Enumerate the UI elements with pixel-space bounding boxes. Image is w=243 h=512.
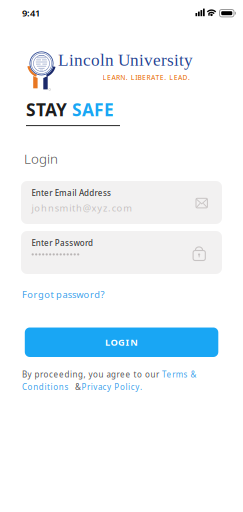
staticText: Terms & (162, 369, 197, 380)
staticText: SAFE (72, 98, 114, 121)
staticText: Privacy Policy. (81, 382, 142, 392)
staticText: & (75, 382, 81, 392)
button[interactable]: Enter Email Address (21, 181, 222, 224)
staticText: johnsmith@xyz.com (31, 202, 132, 214)
button[interactable]: Privacy Policy. (81, 382, 161, 392)
staticText: Enter Password (31, 238, 93, 248)
staticText: Forgot password? (22, 288, 104, 301)
staticText: Login (24, 150, 58, 167)
button[interactable]: LOGIN (25, 327, 218, 357)
button[interactable]: Conditions (22, 382, 82, 392)
staticText: 9:41 (22, 7, 40, 19)
staticText: LOGIN (105, 336, 138, 348)
staticText: By proceeding, you agree to our (22, 369, 159, 380)
staticText: Enter Email Address (31, 188, 111, 198)
staticText: Conditions (22, 382, 68, 392)
staticText: STAY (26, 98, 67, 121)
button[interactable]: Forgot password? (22, 288, 122, 300)
staticText: LEARN. LIBERATE. LEAD. (102, 73, 190, 82)
staticText: Lincoln University (58, 50, 193, 69)
button[interactable]: Enter Password (21, 231, 222, 274)
button[interactable]: Terms & (162, 369, 217, 379)
